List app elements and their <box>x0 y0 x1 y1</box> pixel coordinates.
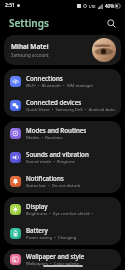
staticText: Quick Share • Samsung DeX • Android Auto <box>26 107 115 113</box>
staticText: Battery <box>26 226 48 234</box>
staticText: 40% <box>105 3 114 9</box>
button[interactable]: Modes and Routines <box>4 121 121 145</box>
staticText: Settings <box>9 16 49 30</box>
staticText: 2:51 <box>5 2 15 9</box>
staticText: Power saving • Charging <box>26 235 77 241</box>
staticText: Wallpapers • Color palette <box>26 261 80 267</box>
button[interactable]: Connected devices <box>4 93 121 117</box>
staticText: Modes and Routines <box>26 126 87 134</box>
button[interactable]: Notifications <box>4 169 121 193</box>
staticText: Modes • Routines <box>26 135 63 141</box>
button[interactable]: Mihai Matei <box>4 35 121 65</box>
staticText: Notifications <box>26 174 64 182</box>
staticText: Status bar • Do not disturb <box>26 183 81 189</box>
staticText: Mihai Matei <box>11 42 49 51</box>
staticText: Wallpaper and style <box>26 252 85 260</box>
button[interactable]: Wallpaper and style <box>4 249 121 270</box>
button[interactable]: Connections <box>4 69 121 93</box>
button[interactable]: Battery <box>4 221 121 245</box>
button[interactable]: Search <box>103 15 119 31</box>
staticText: Sounds and vibration <box>26 150 89 158</box>
staticText: Connections <box>26 74 63 82</box>
staticText: LTE <box>89 4 96 9</box>
staticText: Connected devices <box>26 98 82 106</box>
staticText: Brightness • Eye comfort shield • Naviga… <box>26 211 115 217</box>
button[interactable]: Display <box>4 197 121 221</box>
staticText: Samsung account <box>11 52 49 58</box>
staticText: Wi-Fi • Bluetooth • SIM manager <box>26 83 94 89</box>
button[interactable]: Sounds and vibration <box>4 145 121 169</box>
staticText: Sound mode • Ringtone <box>26 159 75 165</box>
button[interactable]: Profile photo <box>92 38 116 62</box>
staticText: Display <box>26 202 48 210</box>
